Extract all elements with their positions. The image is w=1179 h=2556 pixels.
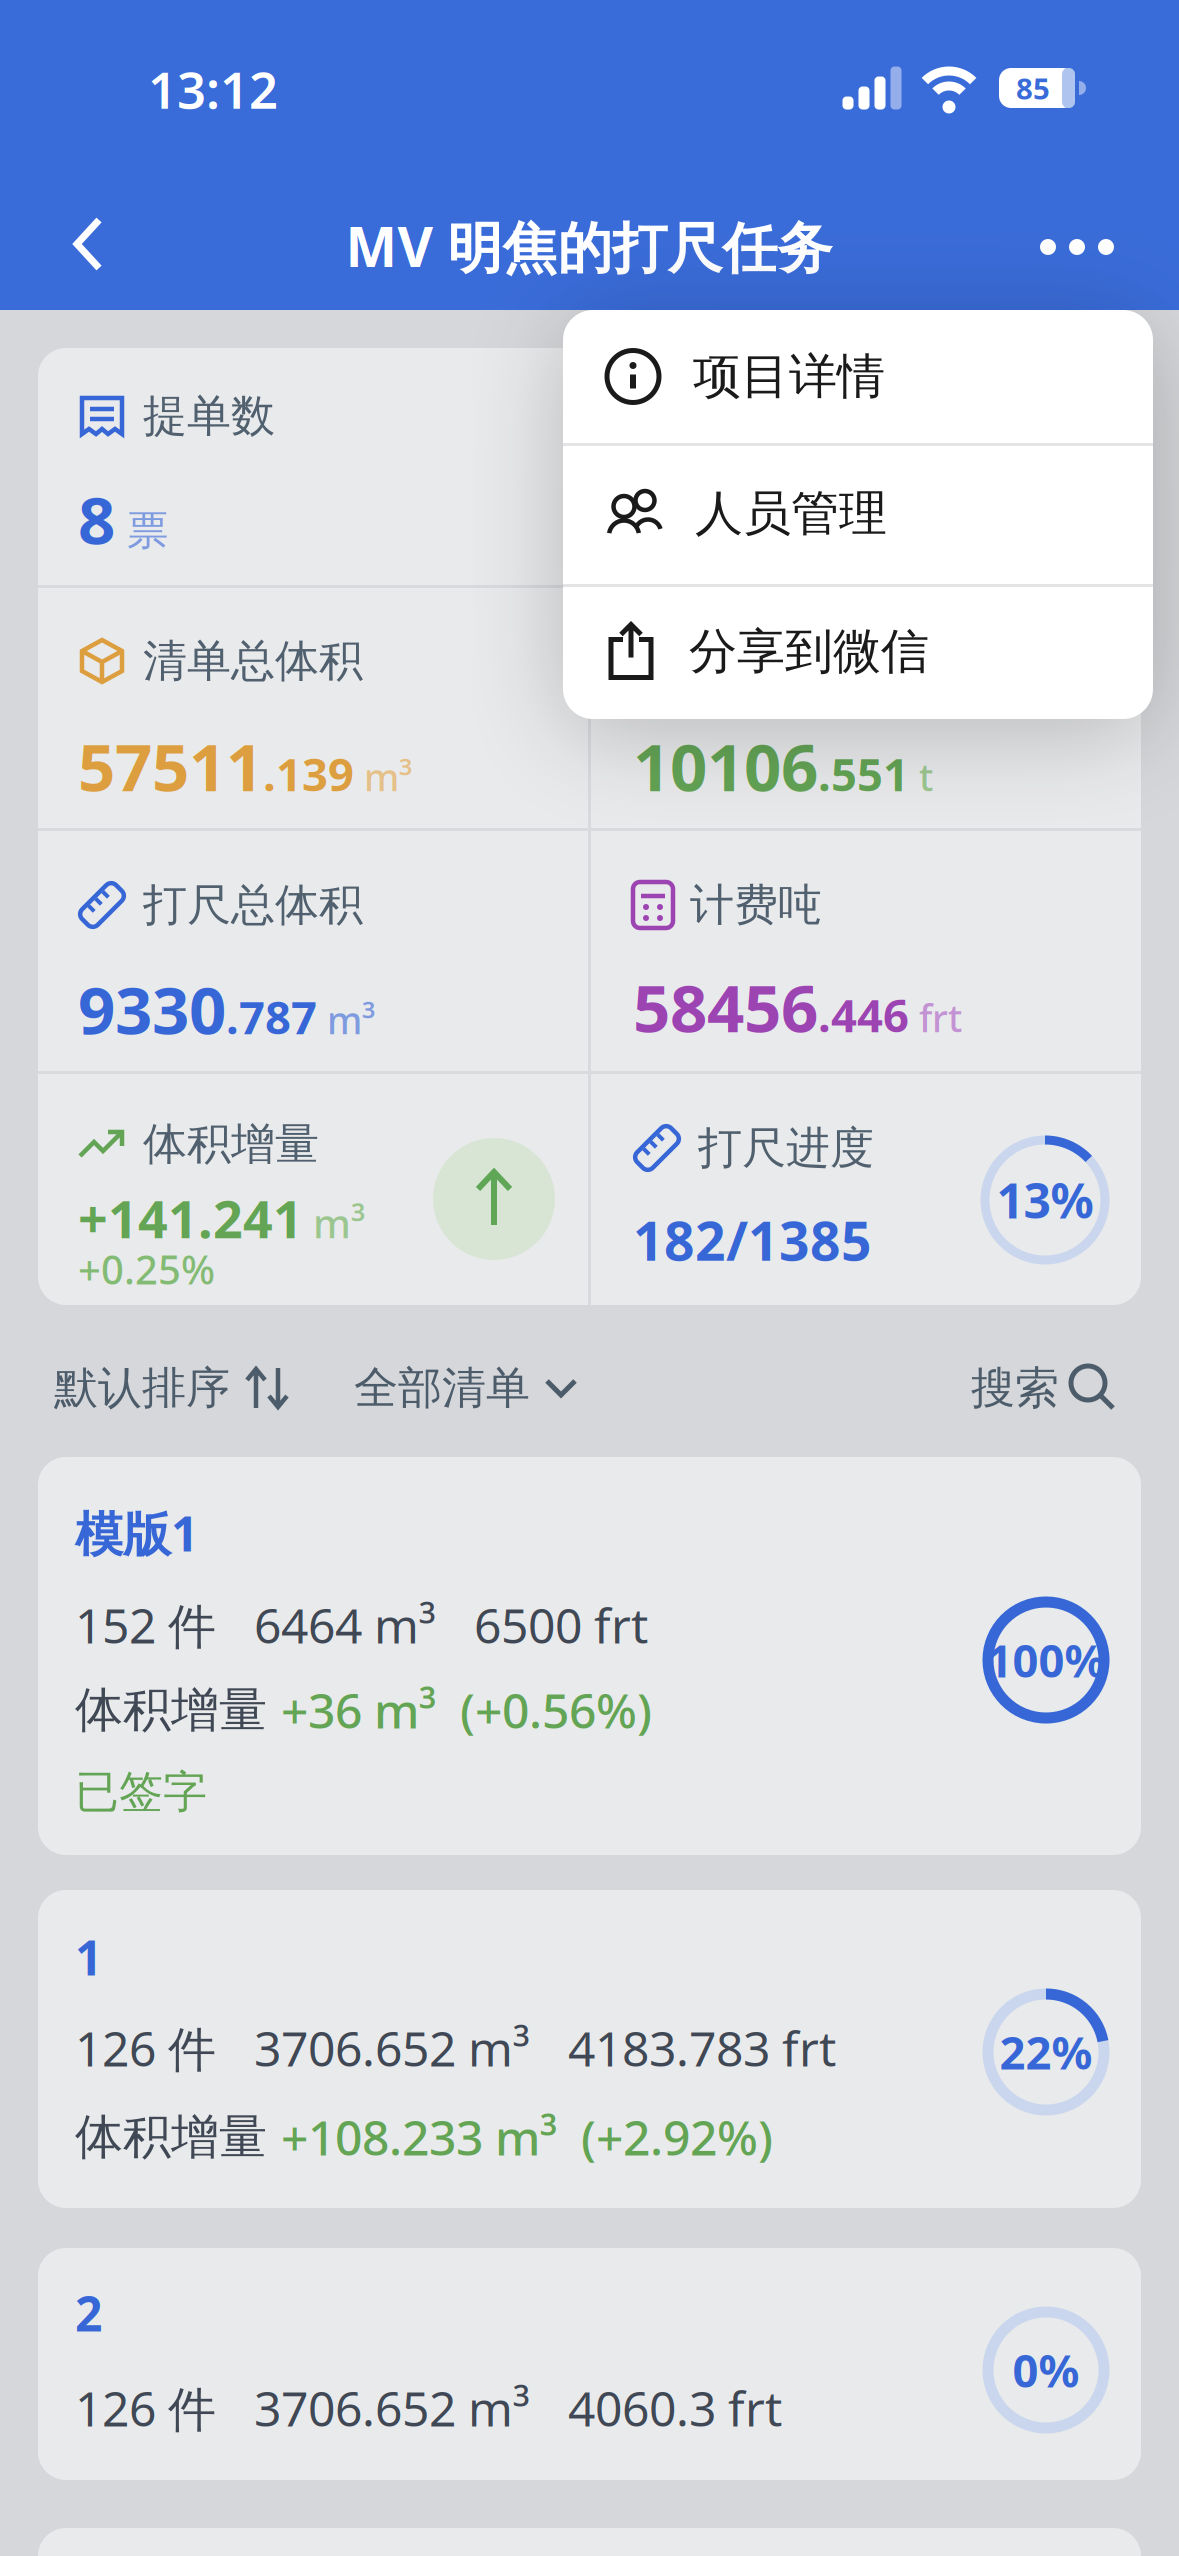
staticText: 4183.783 frt xyxy=(568,2016,836,2080)
button[interactable]: 2 xyxy=(38,2248,1141,2480)
staticText: 6500 frt xyxy=(474,1593,648,1657)
staticText: m³ xyxy=(354,752,412,802)
button[interactable]: 人员管理 xyxy=(605,443,1125,584)
staticText: 模版1 xyxy=(75,1501,198,1565)
staticText: 13% xyxy=(996,1168,1093,1232)
button[interactable]: 模版1 xyxy=(38,1457,1141,1855)
staticText: 打尺进度 xyxy=(698,1121,874,1175)
staticText: 126 件 xyxy=(75,2376,216,2440)
staticText: .551 xyxy=(818,744,909,804)
staticText: 体积增量 xyxy=(75,1680,281,1739)
staticText: 体积增量 xyxy=(75,2107,281,2166)
button[interactable]: 分享到微信 xyxy=(605,584,1125,719)
staticText: 全部清单 xyxy=(354,1361,530,1415)
staticText: 默认排序 xyxy=(54,1361,230,1415)
staticText: .787 xyxy=(226,987,317,1047)
staticText: +0.25% xyxy=(78,1242,215,1295)
button[interactable]: 1 xyxy=(38,1890,1141,2208)
staticText: 85 xyxy=(1016,68,1050,107)
staticText: .446 xyxy=(818,985,909,1045)
staticText: 计费吨 xyxy=(690,878,822,932)
button[interactable]: More xyxy=(1022,217,1132,277)
staticText: 8 xyxy=(78,476,115,562)
staticText: 152 件 xyxy=(75,1593,216,1657)
staticText: 清单总体积 xyxy=(143,634,363,688)
button[interactable]: 搜索 xyxy=(971,1361,1115,1415)
staticText: frt xyxy=(909,993,962,1043)
staticText: m³ xyxy=(303,1196,365,1249)
button[interactable]: 默认排序 xyxy=(54,1361,290,1415)
staticText: 已签字 xyxy=(75,1765,207,1819)
staticText: 3706.652 m³ xyxy=(254,2016,530,2080)
staticText: 票 xyxy=(127,505,168,556)
staticText: 人员管理 xyxy=(695,484,887,543)
staticText: t xyxy=(909,752,933,802)
staticText: 1 xyxy=(75,1925,102,1989)
staticText: 58456 xyxy=(633,964,818,1050)
staticText: 搜索 xyxy=(971,1361,1059,1415)
staticText: 4060.3 frt xyxy=(568,2376,782,2440)
staticText: 9330 xyxy=(78,966,226,1052)
staticText: 3706.652 m³ xyxy=(254,2376,530,2440)
button[interactable]: Back xyxy=(53,209,123,279)
staticText: +141.241 xyxy=(78,1183,303,1253)
staticText: MV 明焦的打尺任务 xyxy=(345,210,832,282)
staticText: 0% xyxy=(1012,2340,1079,2400)
staticText: 182/1385 xyxy=(633,1205,872,1275)
staticText: 体积增量 xyxy=(143,1117,319,1171)
staticText: 57511 xyxy=(78,723,263,809)
staticText: 126 件 xyxy=(75,2016,216,2080)
staticText: .139 xyxy=(263,744,354,804)
staticText: 100% xyxy=(986,1630,1105,1690)
button[interactable]: 项目详情 xyxy=(605,310,1125,443)
staticText: 提单数 xyxy=(143,389,275,443)
staticText: 2 xyxy=(75,2281,102,2345)
staticText: m³ xyxy=(317,995,375,1045)
staticText: 分享到微信 xyxy=(689,622,929,681)
button[interactable]: 全部清单 xyxy=(354,1361,578,1415)
staticText: +108.233 m³ (+2.92%) xyxy=(281,2105,773,2169)
staticText: 13:12 xyxy=(148,55,278,123)
staticText: 22% xyxy=(999,2022,1092,2082)
staticText: 10106 xyxy=(633,723,818,809)
staticText: 打尺总体积 xyxy=(143,878,363,932)
staticText: 6464 m³ xyxy=(254,1593,436,1657)
staticText: 项目详情 xyxy=(693,347,885,406)
staticText: +36 m³ (+0.56%) xyxy=(281,1678,652,1742)
